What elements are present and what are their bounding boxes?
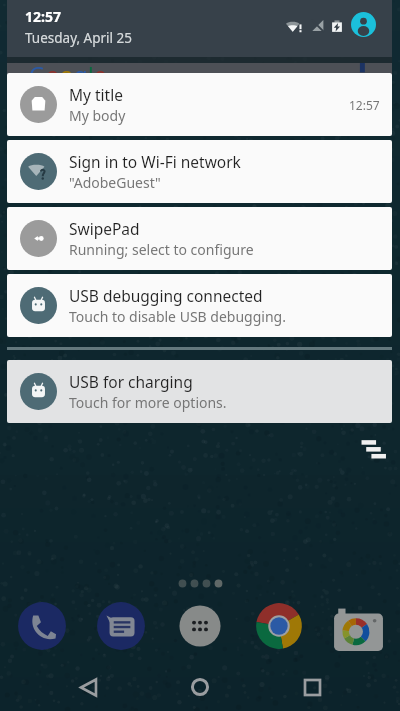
staticText: Touch for more options. — [69, 393, 227, 412]
staticText: Running; select to configure — [69, 240, 254, 259]
button[interactable]: Messages — [95, 600, 147, 652]
staticText: g — [74, 59, 88, 86]
staticText: USB debugging connected — [69, 285, 263, 306]
staticText: 12:57 — [349, 97, 380, 113]
staticText: SwipePad — [69, 218, 140, 239]
staticText: Tuesday, April 25 — [25, 29, 133, 47]
button[interactable]: Camera — [332, 600, 384, 652]
staticText: "AdobeGuest" — [69, 173, 161, 192]
button[interactable]: Phone — [16, 600, 68, 652]
staticText: o — [46, 59, 60, 86]
button[interactable]: All apps — [174, 600, 226, 652]
staticText: Sign in to Wi-Fi network — [69, 151, 241, 172]
staticText: l — [88, 59, 94, 86]
button[interactable]: Back — [64, 663, 112, 711]
staticText: 12:57 — [25, 7, 61, 26]
staticText: My title — [69, 84, 123, 105]
button[interactable]: USB debugging connected — [7, 274, 392, 337]
button[interactable]: Clear all notifications — [361, 436, 387, 462]
button[interactable]: My title — [7, 73, 392, 136]
staticText: G — [29, 59, 46, 86]
button[interactable]: USB for charging — [7, 360, 392, 423]
staticText: o — [60, 59, 74, 86]
staticText: e — [94, 59, 107, 86]
staticText: My body — [69, 106, 126, 125]
button[interactable]: Chrome — [253, 600, 305, 652]
staticText: Touch to disable USB debugging. — [69, 307, 286, 326]
button[interactable]: Recents — [288, 663, 336, 711]
button[interactable]: SwipePad — [7, 207, 392, 270]
button[interactable]: Home — [176, 663, 224, 711]
button[interactable]: Sign in to Wi-Fi network — [7, 140, 392, 203]
staticText: USB for charging — [69, 371, 193, 392]
